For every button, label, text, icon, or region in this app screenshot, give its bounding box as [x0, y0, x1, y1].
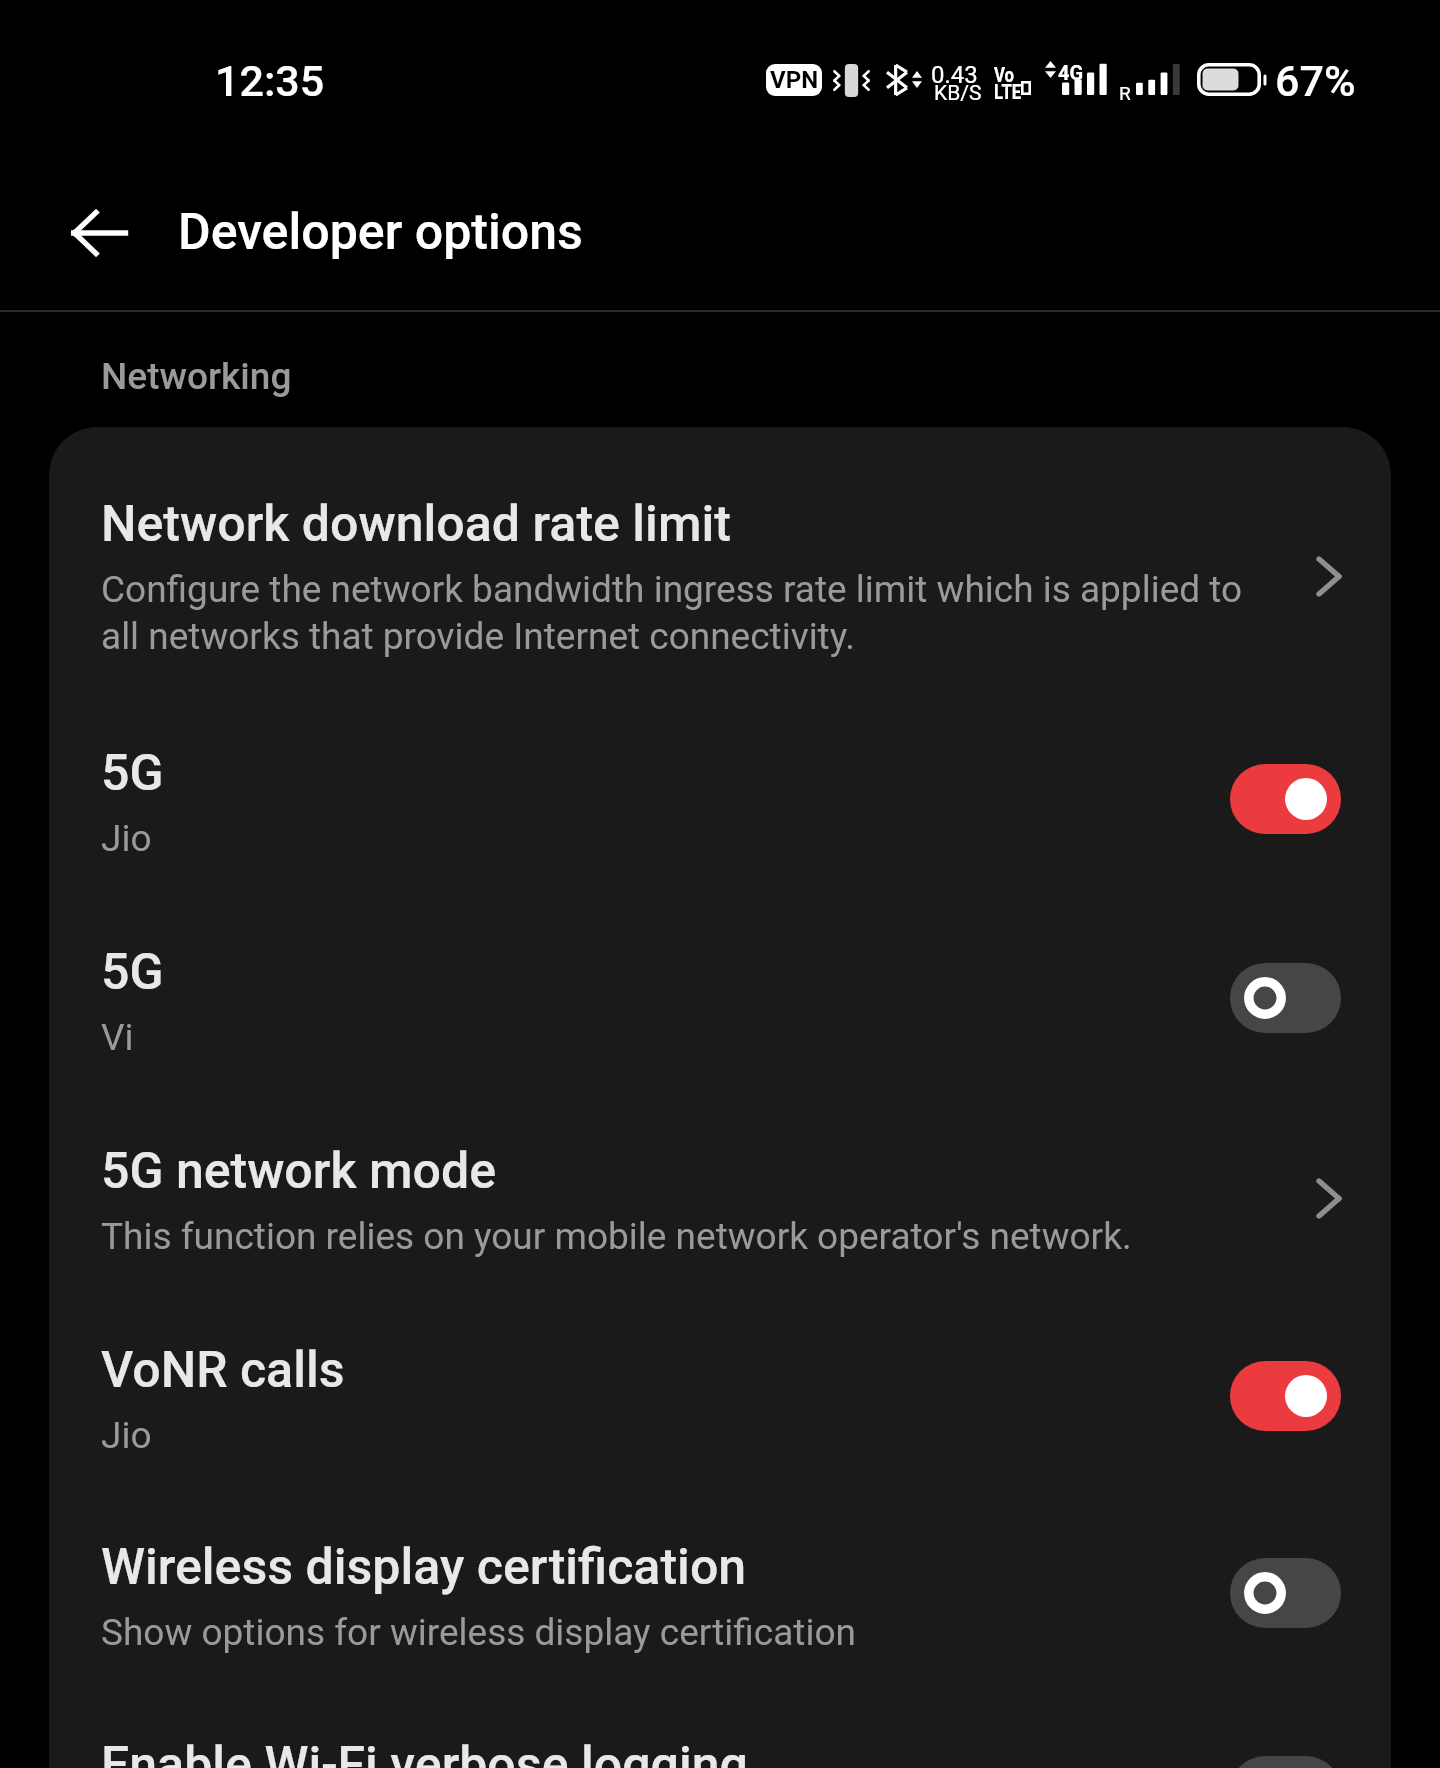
staticText: 12:35 — [215, 56, 325, 106]
button[interactable]: 5G — [49, 737, 1391, 902]
button[interactable]: Toggle on — [1230, 764, 1341, 834]
staticText: Vo — [994, 63, 1015, 88]
button[interactable]: VoNR calls — [49, 1334, 1391, 1499]
staticText: Enable Wi-Fi verbose logging — [101, 1736, 748, 1768]
staticText: VoNR calls — [101, 1341, 345, 1400]
staticText: KB/S — [934, 81, 982, 106]
staticText: R — [1119, 82, 1131, 104]
staticText: 0.43 — [931, 61, 978, 89]
staticText: LTE — [994, 80, 1022, 105]
staticText: Network download rate limit — [101, 495, 731, 554]
button[interactable]: Enable Wi-Fi verbose logging — [49, 1729, 1391, 1768]
button[interactable]: Toggle off — [1230, 963, 1341, 1033]
staticText: Jio — [101, 1411, 152, 1458]
staticText: Jio — [101, 814, 152, 861]
staticText: 5G — [101, 943, 164, 1002]
button[interactable]: Wireless display certification — [49, 1531, 1391, 1696]
button[interactable]: Network download rate limit — [49, 488, 1391, 678]
staticText: Networking — [101, 355, 292, 398]
button[interactable]: 5G — [49, 936, 1391, 1101]
staticText: VPN — [770, 66, 819, 94]
staticText: 4G — [1058, 61, 1084, 84]
staticText: 5G — [101, 744, 164, 803]
button[interactable]: Toggle off — [1230, 1756, 1341, 1768]
staticText: Developer options — [178, 203, 583, 262]
staticText: Configure the network bandwidth ingress … — [101, 565, 1251, 659]
button[interactable]: Toggle on — [1230, 1361, 1341, 1431]
staticText: 5G network mode — [101, 1142, 497, 1201]
staticText: Vi — [101, 1013, 134, 1060]
staticText: This function relies on your mobile netw… — [101, 1212, 1132, 1259]
staticText: Show options for wireless display certif… — [101, 1608, 856, 1655]
staticText: 67% — [1275, 56, 1356, 106]
button[interactable]: Back — [39, 173, 159, 293]
staticText: Wireless display certification — [101, 1538, 747, 1597]
button[interactable]: Toggle off — [1230, 1558, 1341, 1628]
button[interactable]: 5G network mode — [49, 1135, 1391, 1325]
